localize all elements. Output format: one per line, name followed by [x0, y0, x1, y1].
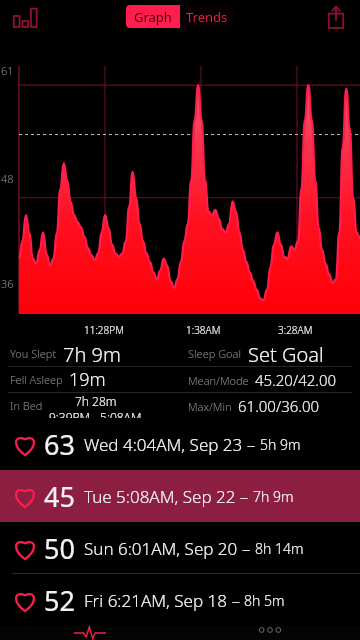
staticText: 7h 9m — [63, 341, 121, 366]
staticText: 61 — [1, 63, 14, 78]
button[interactable]: 50 — [0, 522, 360, 574]
staticText: 19m — [69, 367, 106, 392]
staticText: 45.20/42.00 — [255, 370, 337, 390]
staticText: You Slept — [10, 346, 57, 361]
button[interactable]: Mean/Mode — [180, 367, 360, 392]
button[interactable]: Charts — [12, 7, 38, 27]
staticText: 1:38AM — [186, 323, 221, 337]
staticText: 7h 28m — [75, 393, 117, 409]
button[interactable]: Share — [326, 5, 346, 29]
button[interactable]: Max/Min — [180, 393, 360, 418]
staticText: Set Goal — [248, 341, 324, 366]
staticText: 45 — [44, 478, 75, 515]
staticText: 36 — [1, 276, 14, 291]
staticText: 3:28AM — [278, 323, 313, 337]
button[interactable]: Sleep Goal — [180, 341, 360, 366]
staticText: Max/Min — [188, 399, 232, 414]
button[interactable]: In Bed — [0, 393, 180, 418]
staticText: 52 — [44, 582, 75, 619]
staticText: Fri 6:21AM, Sep 18 – — [84, 589, 240, 612]
button[interactable]: Heart — [0, 626, 180, 640]
staticText: 48 — [1, 171, 14, 186]
staticText: 8h 14m — [255, 539, 304, 558]
button[interactable]: 52 — [0, 574, 360, 626]
staticText: 11:28PM — [84, 323, 124, 337]
staticText: 63 — [44, 426, 75, 463]
staticText: 50 — [44, 530, 75, 567]
button[interactable]: More — [180, 626, 360, 640]
staticText: 61.00/36.00 — [238, 396, 320, 416]
staticText: 7h 9m — [253, 487, 294, 506]
button[interactable]: You Slept — [0, 341, 180, 366]
staticText: Graph — [134, 8, 172, 26]
staticText: 5h 9m — [260, 435, 301, 454]
staticText: 8h 5m — [244, 591, 285, 610]
staticText: Sun 6:01AM, Sep 20 – — [84, 537, 251, 560]
staticText: Trends — [186, 8, 228, 26]
button[interactable]: Trends — [180, 5, 234, 28]
button[interactable]: 45 — [0, 470, 360, 522]
button[interactable]: Fell Asleep — [0, 367, 180, 392]
button[interactable]: Graph — [126, 5, 180, 28]
staticText: Sleep Goal — [188, 346, 242, 361]
button[interactable]: 63 — [0, 418, 360, 470]
staticText: Fell Asleep — [10, 372, 63, 387]
staticText: Wed 4:04AM, Sep 23 – — [84, 433, 256, 456]
staticText: Tue 5:08AM, Sep 22 – — [84, 485, 249, 508]
staticText: 9:39PM - 5:08AM — [49, 409, 142, 418]
staticText: In Bed — [10, 398, 43, 413]
staticText: Mean/Mode — [188, 373, 249, 388]
